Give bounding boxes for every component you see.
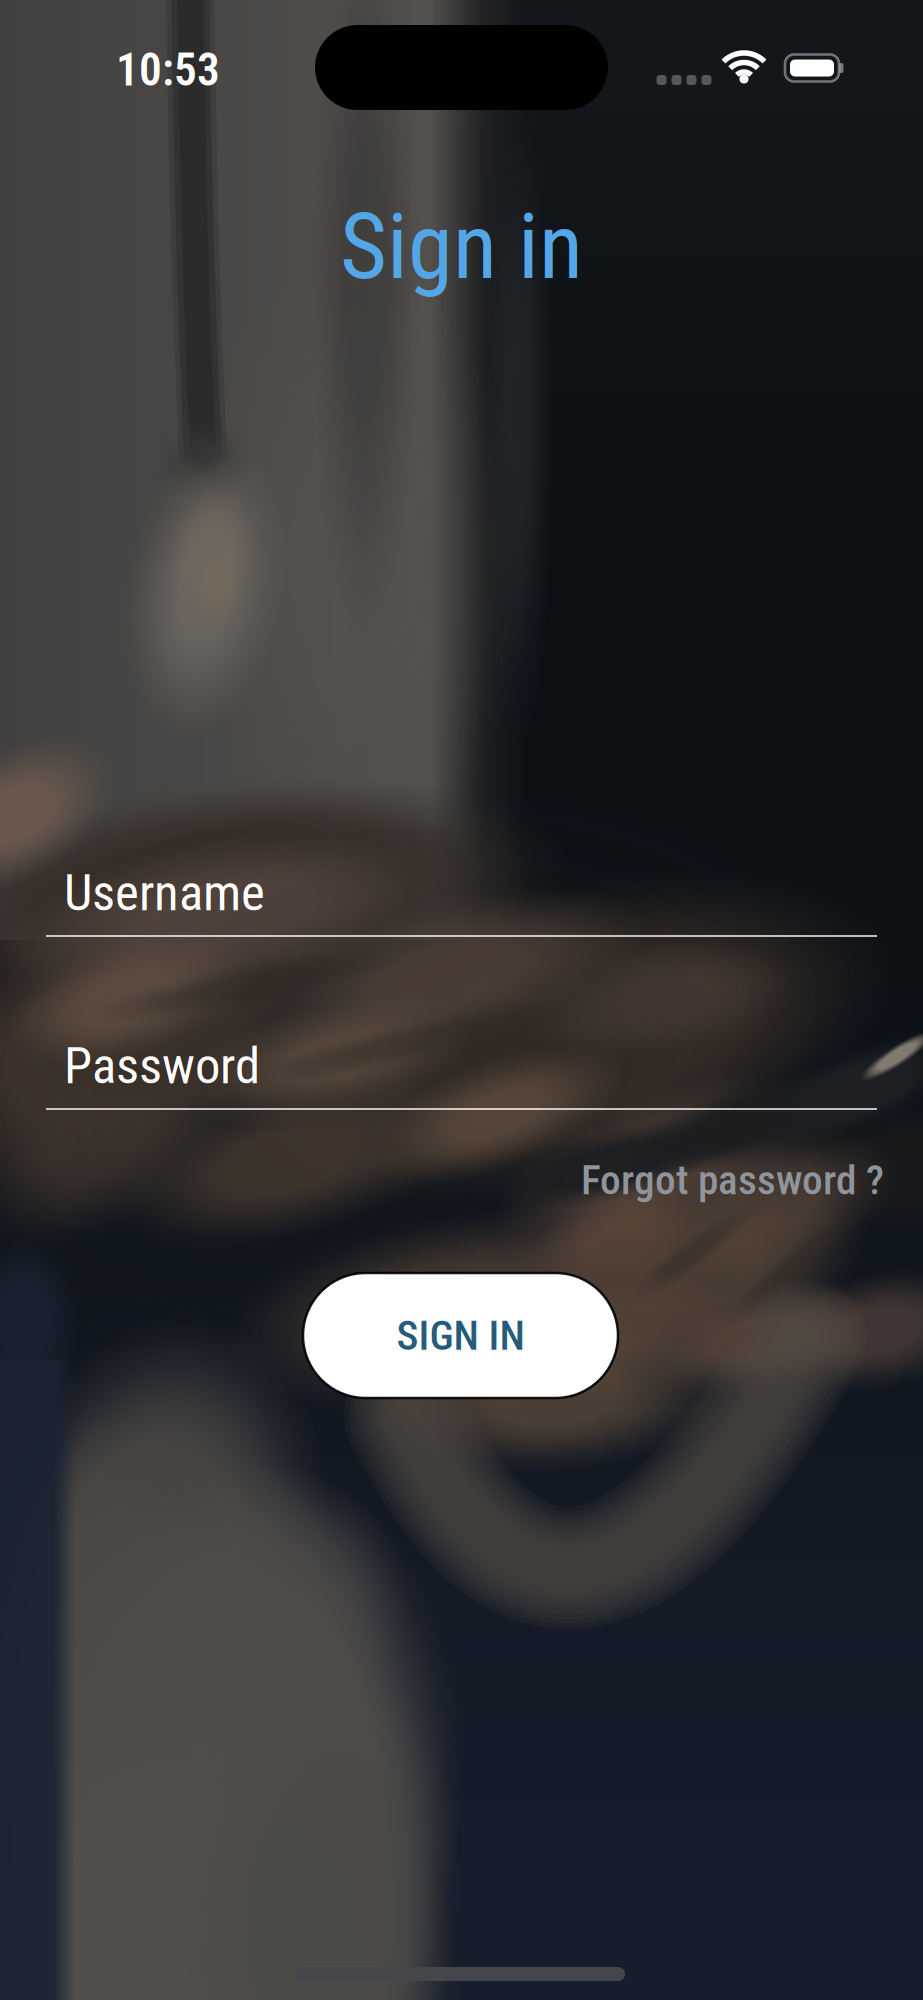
button[interactable]: Password	[0, 1004, 923, 1114]
staticText: Password	[64, 1036, 260, 1096]
staticText: 10:53	[116, 43, 220, 96]
staticText: Username	[64, 863, 265, 923]
button[interactable]: Forgot password ?	[39, 1156, 884, 1204]
staticText: SIGN IN	[396, 1311, 524, 1360]
staticText: Sign in	[340, 194, 583, 300]
button[interactable]: Username	[0, 831, 923, 941]
staticText: Forgot password ?	[581, 1156, 884, 1204]
button[interactable]: SIGN IN	[303, 1273, 618, 1398]
